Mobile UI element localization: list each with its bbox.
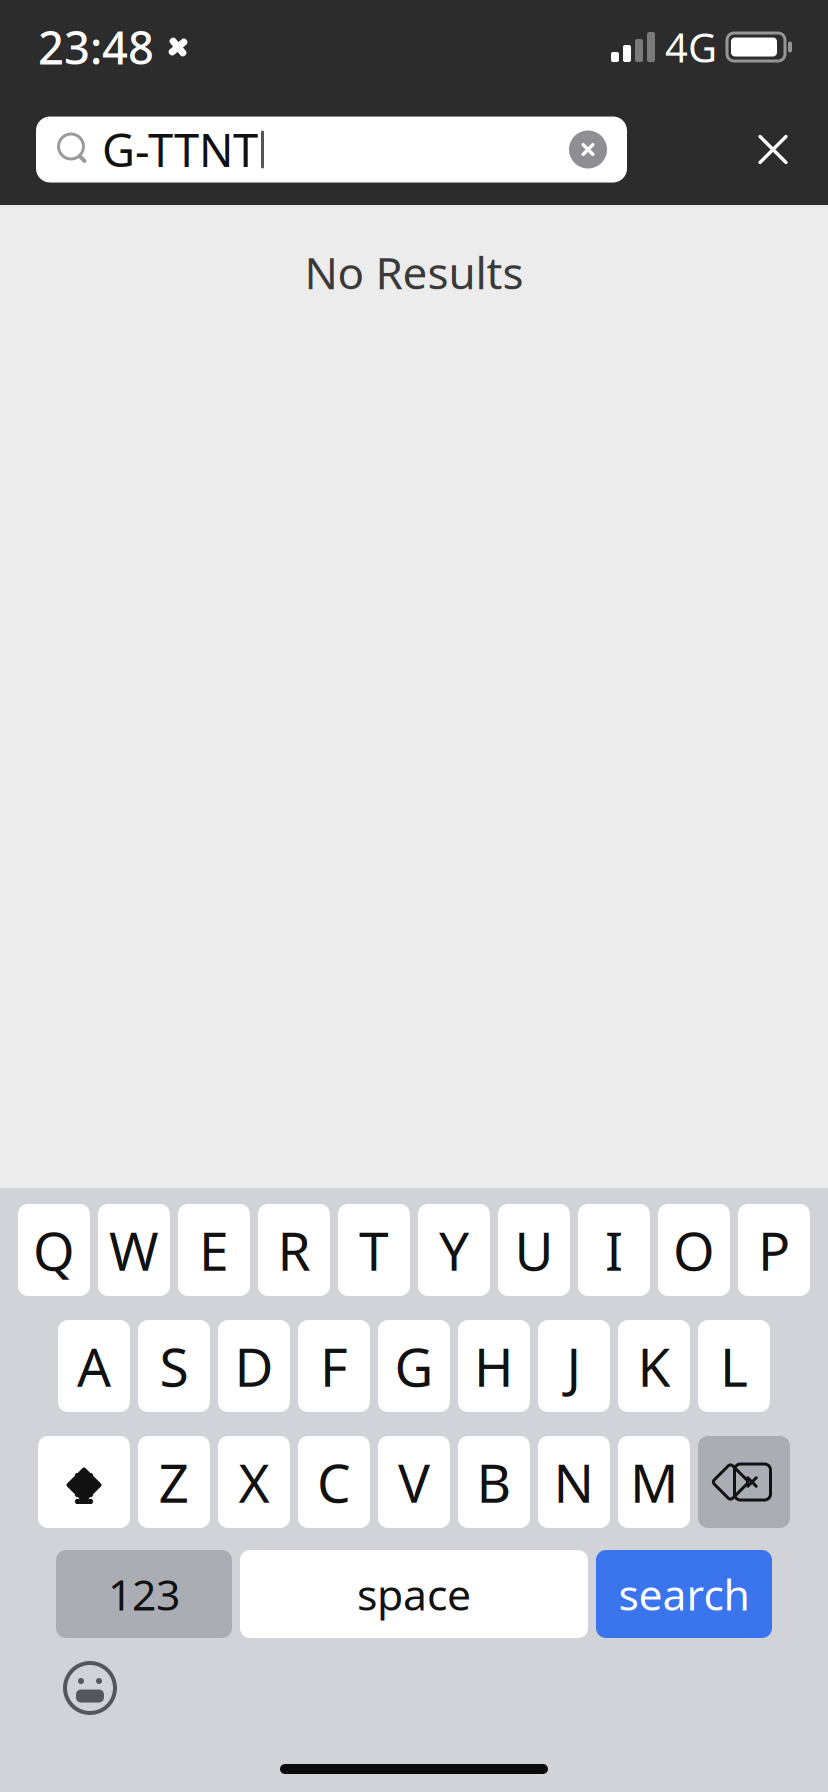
button[interactable]: W <box>98 1204 170 1296</box>
staticText: P <box>758 1215 790 1285</box>
button[interactable]: C <box>298 1436 370 1528</box>
staticText: G-TTNT <box>102 119 258 180</box>
button[interactable]: Shift <box>38 1436 130 1528</box>
staticText: I <box>605 1215 623 1285</box>
staticText: space <box>357 1566 471 1622</box>
staticText: H <box>474 1331 514 1401</box>
button[interactable]: Y <box>418 1204 490 1296</box>
button[interactable]: space <box>240 1550 588 1638</box>
button[interactable]: V <box>378 1436 450 1528</box>
staticText: Y <box>439 1215 469 1285</box>
staticText: C <box>317 1447 351 1517</box>
staticText: O <box>673 1215 715 1285</box>
staticText: Q <box>33 1215 75 1285</box>
button[interactable]: L <box>698 1320 770 1412</box>
staticText: L <box>720 1331 748 1401</box>
staticText: S <box>159 1331 188 1401</box>
button[interactable]: Close search <box>732 113 814 185</box>
staticText: J <box>566 1331 581 1401</box>
staticText: V <box>398 1447 430 1517</box>
staticText: search <box>618 1566 749 1622</box>
button[interactable]: G <box>378 1320 450 1412</box>
button[interactable]: E <box>178 1204 250 1296</box>
staticText: 23:48 <box>38 17 154 77</box>
staticText: 4G <box>665 20 717 73</box>
staticText: A <box>77 1331 111 1401</box>
button[interactable]: M <box>618 1436 690 1528</box>
button[interactable]: N <box>538 1436 610 1528</box>
staticText: U <box>514 1215 553 1285</box>
staticText: M <box>630 1447 678 1517</box>
button[interactable]: I <box>578 1204 650 1296</box>
staticText: B <box>476 1447 511 1517</box>
button[interactable]: H <box>458 1320 530 1412</box>
button[interactable]: Z <box>138 1436 210 1528</box>
button[interactable]: O <box>658 1204 730 1296</box>
button[interactable]: D <box>218 1320 290 1412</box>
button[interactable]: Delete <box>698 1436 790 1528</box>
button[interactable]: J <box>538 1320 610 1412</box>
button[interactable]: S <box>138 1320 210 1412</box>
button[interactable]: 123 <box>56 1550 232 1638</box>
staticText: F <box>320 1331 348 1401</box>
staticText: 123 <box>108 1566 180 1622</box>
staticText: G <box>394 1331 433 1401</box>
button[interactable]: P <box>738 1204 810 1296</box>
button[interactable]: F <box>298 1320 370 1412</box>
button[interactable]: T <box>338 1204 410 1296</box>
button[interactable]: X <box>218 1436 290 1528</box>
button[interactable]: Emoji <box>54 1652 126 1724</box>
button[interactable]: R <box>258 1204 330 1296</box>
button[interactable]: Q <box>18 1204 90 1296</box>
button[interactable]: G-TTNT <box>36 116 627 182</box>
button[interactable]: B <box>458 1436 530 1528</box>
staticText: W <box>109 1215 159 1285</box>
staticText: E <box>199 1215 229 1285</box>
staticText: X <box>238 1447 269 1517</box>
staticText: K <box>637 1331 670 1401</box>
button[interactable]: search <box>596 1550 772 1638</box>
staticText: N <box>553 1447 594 1517</box>
staticText: No Results <box>304 243 523 301</box>
staticText: Z <box>158 1447 189 1517</box>
button[interactable]: A <box>58 1320 130 1412</box>
staticText: R <box>277 1215 310 1285</box>
staticText: T <box>359 1215 389 1285</box>
staticText: D <box>234 1331 273 1401</box>
button[interactable]: U <box>498 1204 570 1296</box>
button[interactable]: K <box>618 1320 690 1412</box>
